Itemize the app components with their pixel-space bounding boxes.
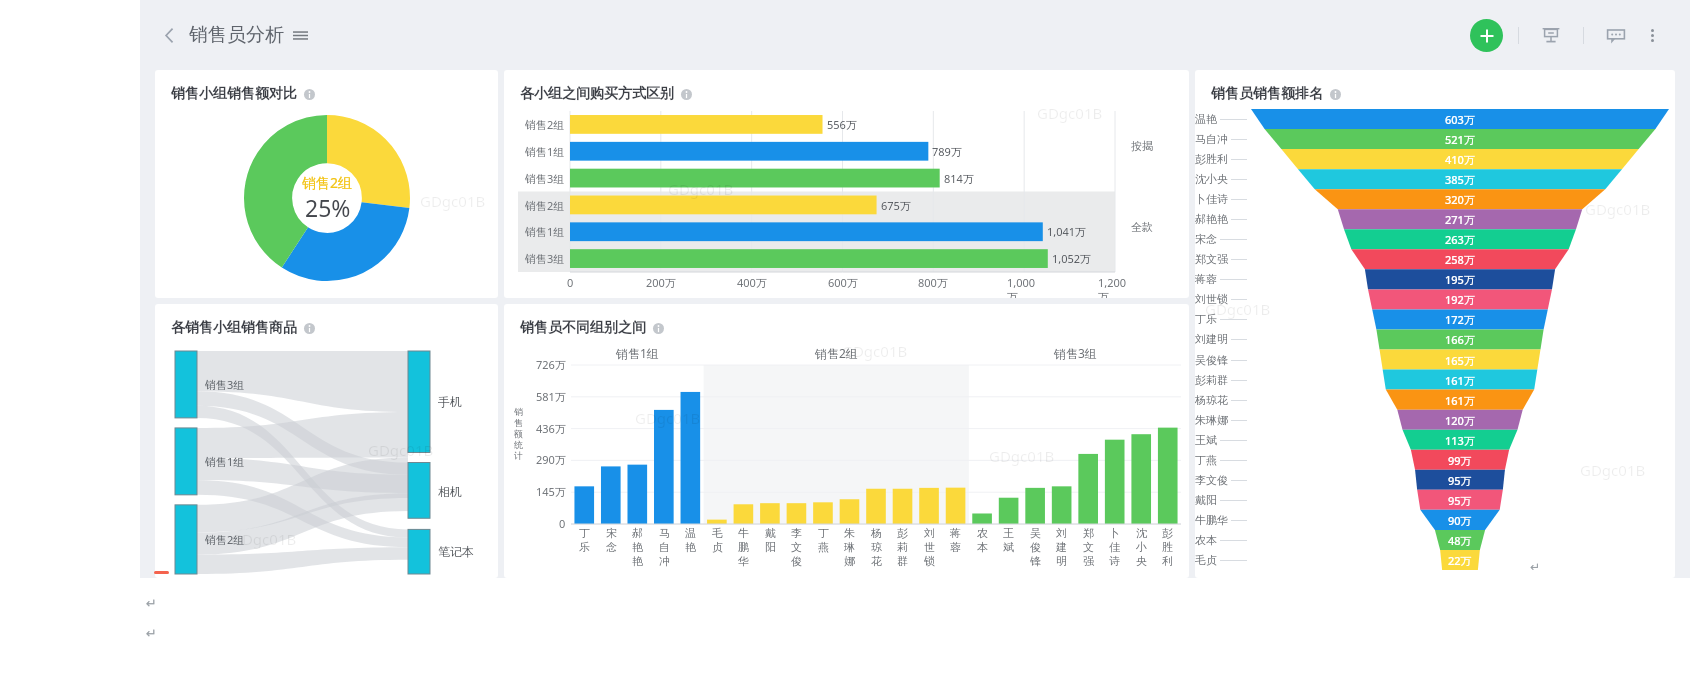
staticText: 世 xyxy=(924,540,935,554)
staticText: 销售3组 xyxy=(1054,345,1097,361)
staticText: 央 xyxy=(1136,554,1147,568)
staticText: 销售2组 xyxy=(525,117,565,132)
staticText: 马自冲 xyxy=(1195,132,1228,146)
staticText: 166万 xyxy=(1445,332,1475,347)
staticText: 600万 xyxy=(828,275,858,290)
staticText: 刘世锁 xyxy=(1195,292,1228,306)
staticText: 刘 xyxy=(1056,526,1067,540)
staticText: 计 xyxy=(514,450,523,461)
staticText: 郝 xyxy=(632,526,643,540)
staticText: 李文俊 xyxy=(1195,473,1228,487)
staticText: 1,041万 xyxy=(1047,224,1087,239)
button[interactable]: Present xyxy=(1534,18,1568,52)
staticText: 1,000万 xyxy=(1007,275,1041,298)
staticText: 郝艳艳 xyxy=(1195,212,1228,226)
staticText: 销售3组 xyxy=(205,377,245,392)
staticText: 蒋蓉 xyxy=(1195,272,1217,286)
staticText: 0 xyxy=(559,516,566,531)
staticText: 自 xyxy=(659,540,670,554)
staticText: GDgc01B xyxy=(1037,103,1103,123)
staticText: 售 xyxy=(514,417,523,428)
staticText: 丁燕 xyxy=(1195,453,1217,467)
staticText: 牛 xyxy=(738,526,749,540)
staticText: 按揭 xyxy=(1131,139,1153,153)
staticText: 宋念 xyxy=(1195,232,1217,246)
staticText: 385万 xyxy=(1445,172,1475,187)
staticText: 800万 xyxy=(918,275,948,290)
staticText: 吴俊锋 xyxy=(1195,353,1228,367)
staticText: 花 xyxy=(871,554,882,568)
staticText: 马 xyxy=(659,526,670,540)
staticText: ↵ xyxy=(146,626,157,641)
staticText: 额 xyxy=(514,428,523,439)
staticText: 华 xyxy=(738,554,749,568)
staticText: 814万 xyxy=(944,171,974,186)
staticText: 1,052万 xyxy=(1052,251,1092,266)
staticText: 90万 xyxy=(1448,513,1472,528)
staticText: ↵ xyxy=(146,596,157,611)
staticText: 789万 xyxy=(932,144,962,159)
staticText: 彭 xyxy=(897,526,908,540)
staticText: 销售2组 xyxy=(302,173,353,192)
staticText: 娜 xyxy=(844,554,855,568)
staticText: 丁 xyxy=(818,526,829,540)
staticText: 念 xyxy=(606,540,617,554)
button[interactable]: Comments xyxy=(1599,18,1633,52)
button[interactable]: Back xyxy=(154,20,184,50)
staticText: GDgc01B xyxy=(1205,299,1271,319)
staticText: 建 xyxy=(1056,540,1067,554)
staticText: GDgc01B xyxy=(668,179,734,199)
staticText: 文 xyxy=(1083,540,1094,554)
staticText: 王 xyxy=(1003,526,1014,540)
staticText: 410万 xyxy=(1445,152,1475,167)
staticText: 556万 xyxy=(827,117,857,132)
staticText: 258万 xyxy=(1445,252,1475,267)
staticText: 卜佳诗 xyxy=(1195,192,1228,206)
staticText: 263万 xyxy=(1445,232,1475,247)
staticText: 本 xyxy=(977,540,988,554)
staticText: 毛贞 xyxy=(1195,553,1217,567)
staticText: 丁 xyxy=(579,526,590,540)
staticText: 胜 xyxy=(1162,540,1173,554)
staticText: 48万 xyxy=(1448,533,1472,548)
staticText: 各小组之间购买方式区别 xyxy=(520,85,674,103)
button[interactable]: More options xyxy=(1638,21,1666,49)
staticText: 销售员销售额排名 xyxy=(1211,85,1323,103)
staticText: 文 xyxy=(791,540,802,554)
staticText: 销售3组 xyxy=(525,171,565,186)
staticText: 温艳 xyxy=(1195,112,1217,126)
staticText: 燕 xyxy=(818,540,829,554)
staticText: 581万 xyxy=(536,389,566,404)
staticText: 丁乐 xyxy=(1195,312,1217,326)
staticText: 刘 xyxy=(924,526,935,540)
staticText: 强 xyxy=(1083,554,1094,568)
staticText: 726万 xyxy=(536,357,566,372)
staticText: 冲 xyxy=(659,554,670,568)
staticText: 乐 xyxy=(579,540,590,554)
staticText: 杨 xyxy=(871,526,882,540)
button[interactable]: Add xyxy=(1470,19,1503,52)
staticText: 李 xyxy=(791,526,802,540)
staticText: 明 xyxy=(1056,554,1067,568)
staticText: 全款 xyxy=(1131,220,1153,234)
staticText: 161万 xyxy=(1445,373,1475,388)
staticText: GDgc01B xyxy=(420,191,486,211)
staticText: 斌 xyxy=(1003,540,1014,554)
staticText: 销售1组 xyxy=(525,224,565,239)
staticText: 销售1组 xyxy=(616,345,659,361)
staticText: 莉 xyxy=(897,540,908,554)
staticText: 22万 xyxy=(1448,553,1472,568)
staticText: 戴 xyxy=(765,526,776,540)
button[interactable]: 销售员分析 xyxy=(189,23,308,47)
staticText: 郑文强 xyxy=(1195,252,1228,266)
staticText: 阳 xyxy=(765,540,776,554)
staticText: 温 xyxy=(685,526,696,540)
staticText: GDgc01B xyxy=(231,529,297,549)
staticText: 朱 xyxy=(844,526,855,540)
staticText: 521万 xyxy=(1445,132,1475,147)
staticText: 各销售小组销售商品 xyxy=(171,319,297,337)
staticText: 320万 xyxy=(1445,192,1475,207)
staticText: 1,200万 xyxy=(1098,275,1132,298)
staticText: 艳 xyxy=(632,540,643,554)
staticText: 99万 xyxy=(1448,453,1472,468)
